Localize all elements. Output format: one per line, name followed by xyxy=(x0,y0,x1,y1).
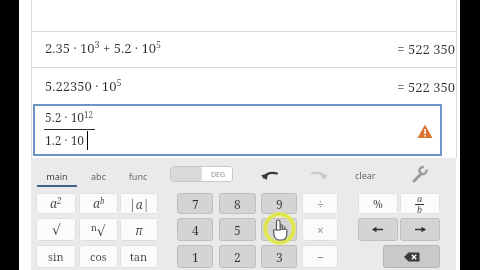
staticText: cos xyxy=(90,249,107,264)
button[interactable] xyxy=(261,169,279,181)
button[interactable] xyxy=(410,165,428,184)
button[interactable]: 3 xyxy=(261,245,297,268)
button[interactable]: cos xyxy=(79,245,118,268)
button[interactable]: 6 xyxy=(261,218,297,241)
staticText: 9 xyxy=(276,196,283,212)
staticText: % xyxy=(373,196,383,211)
staticText: b xyxy=(417,203,423,214)
button[interactable]: 1 xyxy=(177,245,213,268)
staticText: 1.2 · 10 xyxy=(45,132,85,148)
button[interactable]: abc xyxy=(79,162,118,188)
button[interactable]: − xyxy=(302,245,338,268)
staticText: 5.22350 · 105 xyxy=(45,76,122,95)
button[interactable]: tan xyxy=(120,245,158,268)
button[interactable]: DEG xyxy=(170,166,233,182)
button[interactable]: a2 xyxy=(36,193,76,214)
button[interactable]: main xyxy=(36,162,78,188)
staticText: 5.2 · 1012 xyxy=(45,109,94,126)
staticText: 3 xyxy=(276,249,283,265)
staticText: 2 xyxy=(234,249,241,265)
staticText: 5 xyxy=(234,222,241,238)
button[interactable]: func xyxy=(118,162,158,188)
staticText: × xyxy=(317,222,324,238)
button[interactable]: % xyxy=(358,193,398,214)
button[interactable]: 7 xyxy=(177,193,213,214)
staticText: func xyxy=(118,170,158,182)
staticText: |a| xyxy=(129,196,150,212)
button[interactable] xyxy=(383,245,440,268)
button[interactable] xyxy=(358,218,398,241)
staticText: = 522 350 xyxy=(300,40,455,58)
staticText: main xyxy=(36,170,78,182)
button[interactable] xyxy=(33,104,442,156)
button[interactable]: π xyxy=(120,218,158,241)
button[interactable] xyxy=(400,218,440,241)
staticText: 7 xyxy=(192,196,199,212)
staticText: ÷ xyxy=(317,196,324,212)
staticText: 6 xyxy=(276,222,283,238)
staticText: a2 xyxy=(50,195,62,212)
staticText: = 522 350 xyxy=(300,78,455,96)
button[interactable]: |a| xyxy=(120,193,158,214)
staticText: 4 xyxy=(192,222,199,238)
staticText: 8 xyxy=(234,196,241,212)
button[interactable] xyxy=(310,169,328,181)
button[interactable]: 2 xyxy=(219,245,256,268)
staticText: a xyxy=(417,193,423,204)
staticText: abc xyxy=(79,170,118,182)
staticText: DEG xyxy=(203,170,233,180)
staticText: sin xyxy=(48,249,64,264)
button[interactable]: clear xyxy=(352,166,382,184)
button[interactable]: 8 xyxy=(219,193,256,214)
staticText: 1 xyxy=(192,249,199,265)
button[interactable]: n√ xyxy=(79,218,118,241)
button[interactable]: sin xyxy=(36,245,76,268)
staticText: clear xyxy=(355,169,376,181)
staticText: 2.35 · 103 + 5.2 · 105 xyxy=(45,38,162,57)
button[interactable]: ÷ xyxy=(302,193,338,214)
button[interactable]: 9 xyxy=(261,193,297,214)
button[interactable]: × xyxy=(302,218,338,241)
button[interactable]: 4 xyxy=(177,218,213,241)
staticText: π xyxy=(135,222,143,238)
staticText: n√ xyxy=(91,221,106,239)
staticText: √ xyxy=(52,222,61,238)
staticText: − xyxy=(317,249,324,265)
staticText: ab xyxy=(93,195,105,212)
button[interactable]: a xyxy=(400,193,440,214)
staticText: tan xyxy=(130,249,148,264)
button[interactable]: 5 xyxy=(219,218,256,241)
button[interactable]: ab xyxy=(79,193,118,214)
button[interactable]: √ xyxy=(36,218,76,241)
